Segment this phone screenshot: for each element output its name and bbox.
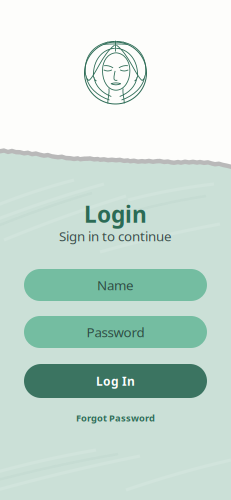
button[interactable]: Forgot Password (76, 411, 155, 425)
staticText: Password (86, 323, 144, 341)
button[interactable]: Password (24, 316, 207, 348)
staticText: Forgot Password (76, 412, 155, 424)
button[interactable]: Name (24, 269, 207, 301)
staticText: Log In (96, 373, 135, 389)
button[interactable]: Log In (24, 364, 207, 398)
staticText: Login (84, 199, 147, 229)
staticText: Name (97, 276, 134, 294)
staticText: Sign in to continue (59, 227, 172, 245)
